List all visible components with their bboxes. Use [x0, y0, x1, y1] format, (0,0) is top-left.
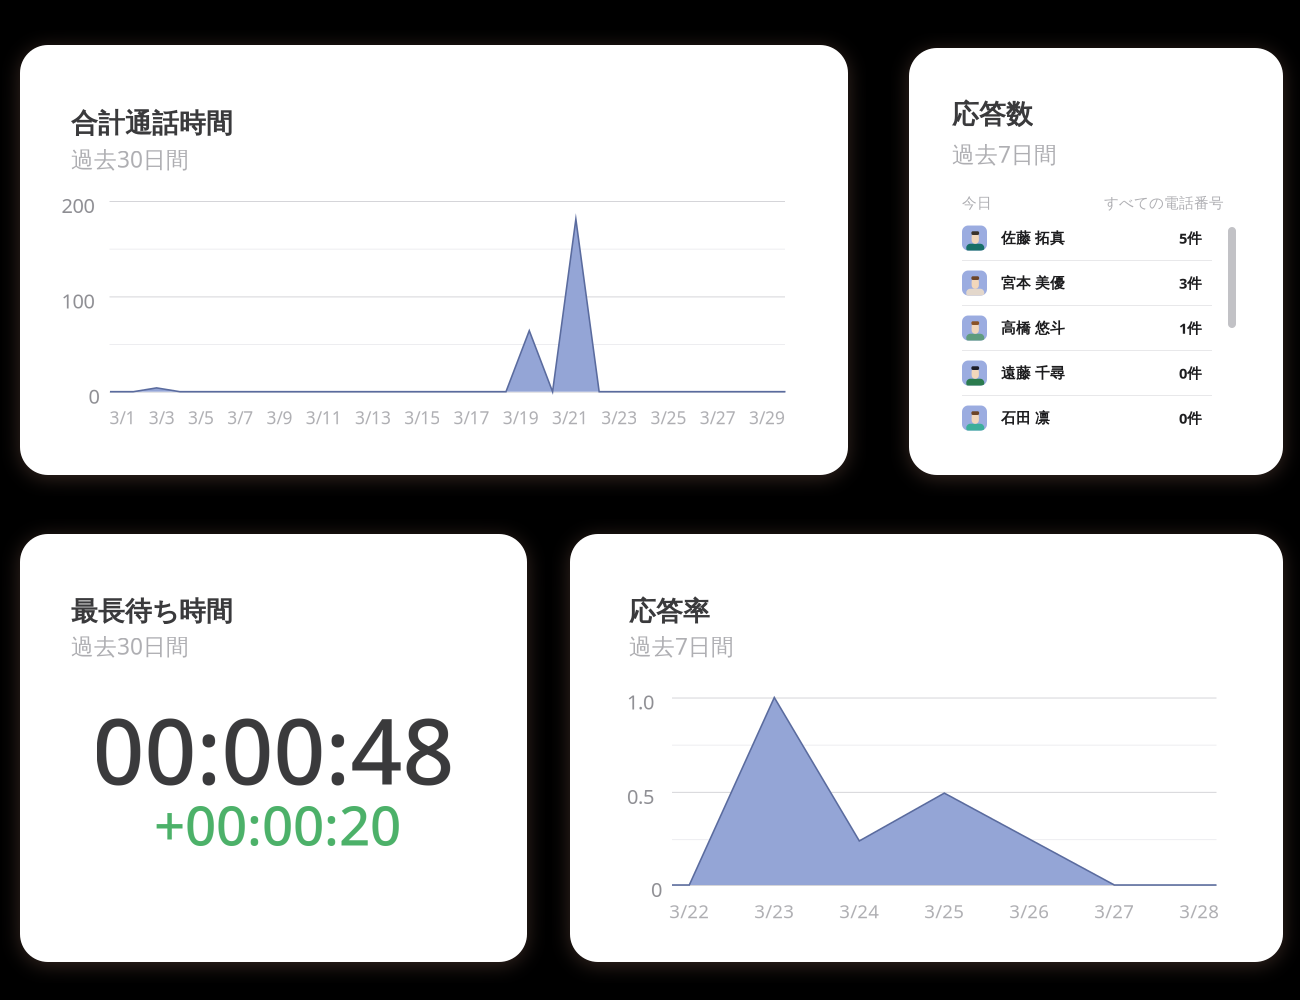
- staticText: 3/28: [1179, 898, 1219, 923]
- staticText: +00:00:20: [154, 788, 401, 861]
- staticText: 1.0: [627, 688, 654, 715]
- staticText: 3/19: [503, 406, 539, 429]
- staticText: 3/13: [355, 406, 391, 429]
- staticText: 3/15: [404, 406, 440, 429]
- staticText: 5件: [1179, 228, 1202, 248]
- staticText: 高橋 悠斗: [1001, 319, 1065, 337]
- staticText: 0.5: [627, 783, 654, 809]
- staticText: すべての電話番号: [1104, 194, 1224, 212]
- staticText: 3/25: [650, 406, 686, 429]
- button[interactable]: 石田 凛: [962, 396, 1247, 440]
- staticText: 合計通話時間: [71, 107, 233, 140]
- staticText: 過去7日間: [952, 139, 1057, 169]
- staticText: 宮本 美優: [1001, 274, 1065, 292]
- staticText: 3/5: [188, 406, 214, 429]
- staticText: 過去30日間: [71, 631, 189, 661]
- staticText: 3/24: [839, 898, 879, 923]
- staticText: 3/22: [669, 898, 709, 923]
- staticText: 3/3: [149, 406, 175, 429]
- staticText: 遠藤 千尋: [1001, 364, 1065, 382]
- staticText: 過去7日間: [629, 631, 734, 661]
- staticText: 3/1: [109, 406, 135, 429]
- staticText: 3件: [1179, 273, 1202, 293]
- staticText: 最長待ち時間: [71, 595, 233, 628]
- staticText: 3/25: [924, 898, 964, 923]
- staticText: 0: [651, 876, 662, 903]
- staticText: 3/27: [700, 406, 736, 429]
- staticText: 3/11: [306, 406, 342, 429]
- staticText: 3/26: [1009, 898, 1049, 923]
- staticText: 石田 凛: [1001, 409, 1050, 427]
- staticText: 200: [61, 192, 94, 219]
- staticText: 3/9: [266, 406, 292, 429]
- staticText: 3/23: [601, 406, 637, 429]
- staticText: 3/29: [749, 406, 785, 429]
- staticText: 0件: [1179, 408, 1202, 428]
- button[interactable]: 高橋 悠斗: [962, 306, 1247, 350]
- staticText: 今日: [962, 194, 992, 212]
- staticText: 3/23: [754, 898, 794, 923]
- staticText: 佐藤 拓真: [1001, 229, 1065, 247]
- button[interactable]: 佐藤 拓真: [962, 216, 1247, 260]
- staticText: 3/17: [453, 406, 489, 429]
- button[interactable]: 遠藤 千尋: [962, 351, 1247, 395]
- staticText: 0件: [1179, 363, 1202, 383]
- staticText: 応答率: [629, 595, 710, 628]
- staticText: 応答数: [952, 98, 1033, 131]
- button[interactable]: 宮本 美優: [962, 261, 1247, 305]
- staticText: 過去30日間: [71, 144, 189, 174]
- staticText: 3/21: [552, 406, 588, 429]
- staticText: 3/27: [1094, 898, 1134, 923]
- staticText: 100: [61, 287, 94, 314]
- staticText: 3/7: [227, 406, 253, 429]
- staticText: 0: [88, 383, 99, 409]
- staticText: 1件: [1179, 318, 1202, 338]
- staticText: 00:00:48: [92, 689, 454, 809]
